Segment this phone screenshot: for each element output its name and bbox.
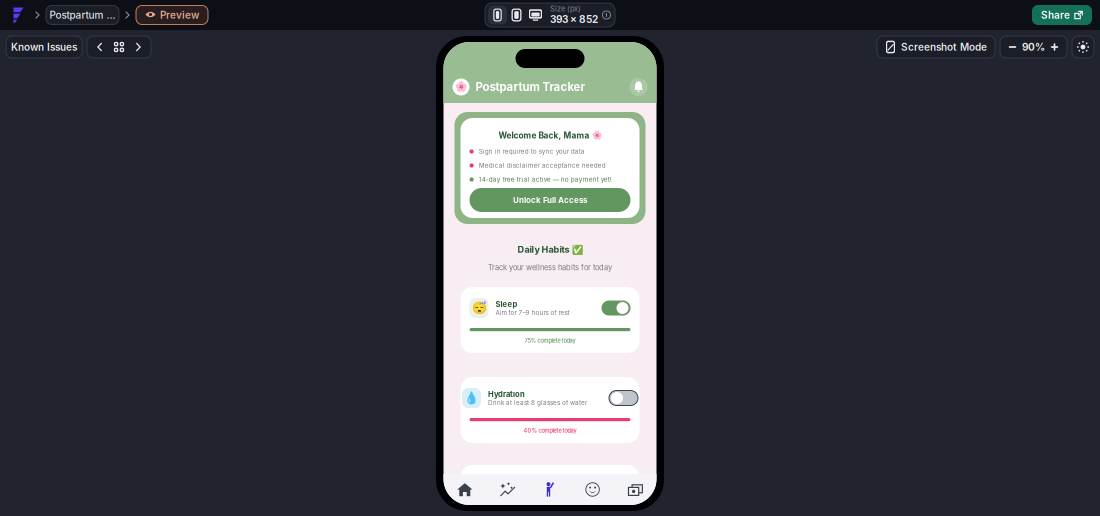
staticText: Known Issues [11,41,77,53]
staticText: Drink at least 8 glasses of water [488,399,587,406]
button[interactable]: All screens [109,37,129,57]
button[interactable]: Phone size [488,5,507,24]
button[interactable]: Tablet size [507,5,526,24]
button[interactable]: 😴 [460,287,639,353]
button[interactable]: Appearance [1072,36,1094,58]
staticText: Screenshot Mode [901,41,987,53]
button[interactable]: Preview [136,5,208,24]
button[interactable]: Library [614,474,656,505]
button[interactable]: Home [8,4,29,26]
staticText: Medical disclaimer acceptance needed [479,162,606,169]
staticText: 💧 [464,391,479,405]
button[interactable]: Notifications [629,78,647,96]
button[interactable]: 💧 [460,377,639,443]
staticText: Sleep [495,300,517,309]
staticText: Size (px) [550,4,581,13]
button[interactable]: Info [601,9,612,20]
button[interactable]: Previous screen [89,37,109,57]
staticText: Hydration [488,390,525,399]
staticText: 40% complete today [523,427,576,434]
staticText: Aim for 7–9 hours of rest [495,309,569,316]
button[interactable]: Zoom in [1048,40,1061,53]
staticText: Sign in required to sync your data [479,148,585,155]
staticText: Postpartum ... [49,9,115,21]
staticText: Track your wellness habits for today [488,263,612,272]
staticText: 14-day free trial active — no payment ye… [479,176,612,183]
button[interactable]: Home [443,474,486,505]
staticText: Preview [160,9,199,21]
button[interactable]: Known Issues [6,36,82,58]
staticText: Daily Habits ✅ [517,244,582,255]
button[interactable]: Mood [571,474,614,505]
staticText: 90% [1022,41,1045,53]
button[interactable]: Insights [486,474,529,505]
staticText: Unlock Full Access [513,195,587,205]
button[interactable]: Screenshot Mode [877,36,995,58]
button[interactable]: Activity [529,474,571,505]
staticText: Welcome Back, Mama 🌸 [498,130,601,140]
staticText: 393 × 852 [550,13,598,25]
staticText: 😴 [471,301,486,315]
button[interactable]: Next screen [129,37,149,57]
staticText: Postpartum Tracker [475,80,585,94]
staticText: 75% complete today [524,337,575,344]
button[interactable]: Zoom out [1006,40,1019,53]
staticText: Share [1041,9,1070,21]
button[interactable]: Desktop size [526,5,545,24]
staticText: 🌸 [455,81,467,93]
button[interactable]: Share [1032,5,1092,25]
button[interactable]: Unlock Full Access [469,188,630,212]
button[interactable]: Postpartum ... [46,5,119,24]
